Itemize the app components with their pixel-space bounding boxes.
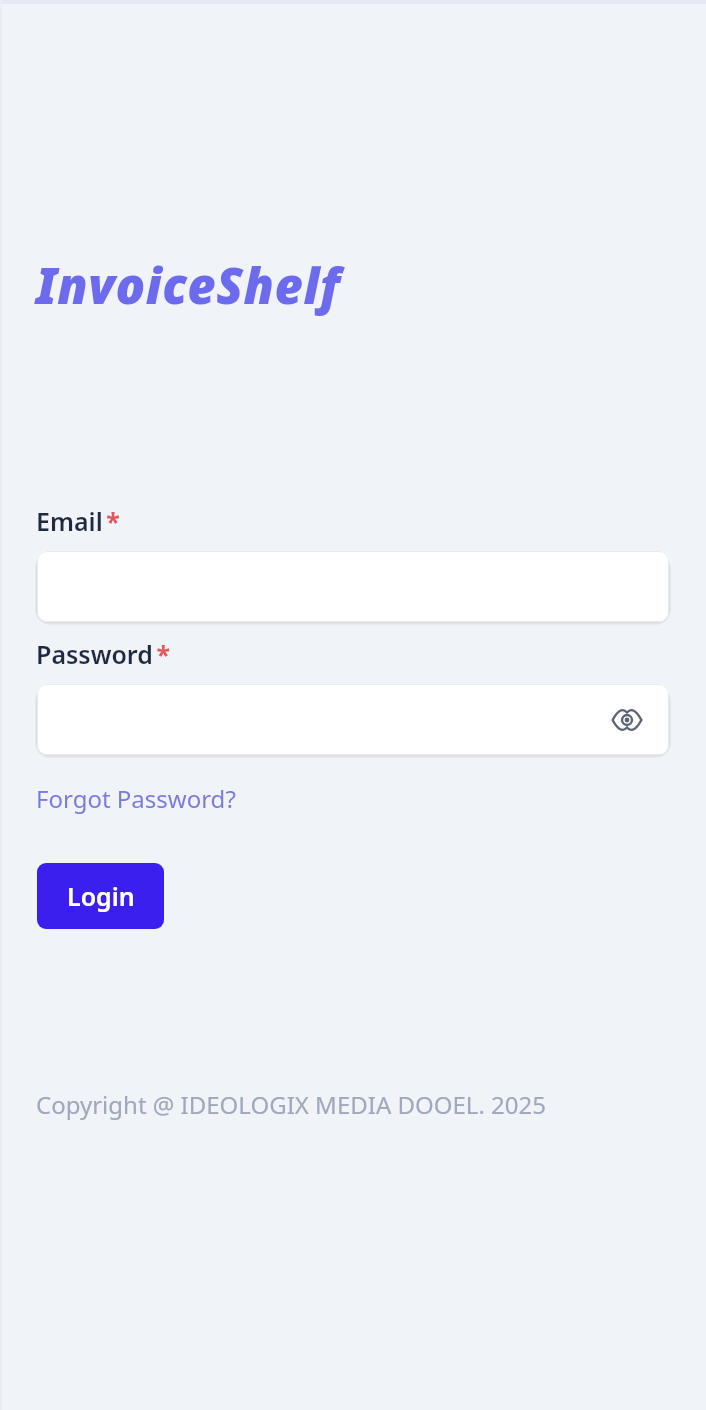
staticText: Copyright @ IDEOLOGIX MEDIA DOOEL. 2025 [36, 1088, 546, 1121]
button[interactable] [37, 551, 669, 622]
button[interactable]: Login [37, 863, 164, 929]
button[interactable]: InvoiceShelf [36, 252, 341, 319]
button[interactable]: Forgot Password? [36, 782, 236, 815]
staticText: Login [67, 879, 135, 913]
staticText: Forgot Password? [36, 782, 236, 815]
button[interactable]: Show password [37, 684, 669, 755]
button[interactable]: Show password [607, 700, 647, 740]
staticText: Password * [36, 637, 171, 671]
staticText: Email * [36, 504, 120, 538]
staticText: InvoiceShelf [36, 252, 341, 319]
